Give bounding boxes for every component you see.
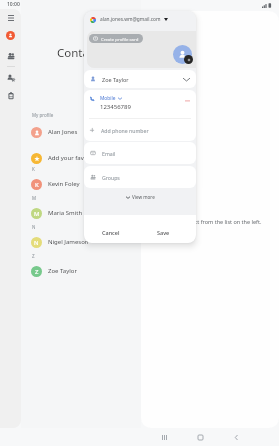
staticText: Create profile card <box>101 36 139 42</box>
staticText: 123456789 <box>100 103 131 111</box>
staticText: 10:00 <box>7 1 20 8</box>
button[interactable]: Remove phone number <box>183 97 191 105</box>
staticText: My profile <box>32 112 54 118</box>
staticText: N <box>32 224 36 230</box>
staticText: Add your favo <box>48 154 88 162</box>
button[interactable]: Alan Jones <box>21 124 141 140</box>
staticText: N <box>34 239 39 247</box>
staticText: Email <box>102 150 116 157</box>
button[interactable]: Add your favo <box>21 150 141 166</box>
button[interactable]: Cancel <box>92 221 130 243</box>
staticText: Mobile <box>100 95 116 102</box>
button[interactable]: Save <box>146 221 180 243</box>
button[interactable]: Z <box>21 263 141 279</box>
staticText: M <box>32 195 37 201</box>
button[interactable]: Add phone number <box>89 119 196 141</box>
staticText: Select a contact from the list on the le… <box>159 218 262 225</box>
staticText: Kevin Foley <box>48 180 80 188</box>
button[interactable]: Home <box>191 428 209 446</box>
staticText: M <box>34 210 40 218</box>
staticText: K <box>35 181 39 189</box>
button[interactable]: Groups <box>4 49 18 63</box>
button[interactable]: Groups <box>90 166 196 188</box>
button[interactable]: Email <box>90 142 196 164</box>
button[interactable]: Recents <box>155 428 173 446</box>
button[interactable]: Create profile card <box>93 34 139 43</box>
staticText: Zoe Taylor <box>102 76 129 83</box>
button[interactable]: Zoe Taylor <box>90 70 196 88</box>
button[interactable]: N <box>21 234 141 250</box>
staticText: Alan Jones <box>48 128 78 136</box>
staticText: alan.jones.wm@gmail.com <box>100 16 161 23</box>
staticText: Z <box>35 268 39 276</box>
button[interactable]: M <box>21 205 141 221</box>
button[interactable]: Back <box>227 428 245 446</box>
staticText: View more <box>132 194 155 200</box>
staticText: Maria Smith <box>48 209 83 217</box>
button[interactable]: View more <box>84 191 196 203</box>
staticText: Contacts <box>57 45 105 61</box>
button[interactable]: Mobile <box>100 95 122 102</box>
staticText: Cancel <box>102 229 120 236</box>
button[interactable]: Change photo <box>173 45 192 64</box>
staticText: Groups <box>102 174 120 181</box>
button[interactable]: Open navigation menu <box>3 10 19 26</box>
staticText: Add phone number <box>101 127 149 134</box>
button[interactable]: Manage contacts <box>4 71 18 85</box>
staticText: Nigel Jameson <box>48 238 89 246</box>
button[interactable]: K <box>21 176 141 192</box>
staticText: Z <box>32 253 35 259</box>
button[interactable]: Trash <box>4 89 18 103</box>
staticText: Zoe Taylor <box>48 267 77 275</box>
staticText: Save <box>157 229 170 236</box>
button[interactable]: Contacts <box>3 28 18 43</box>
staticText: K <box>32 166 35 172</box>
